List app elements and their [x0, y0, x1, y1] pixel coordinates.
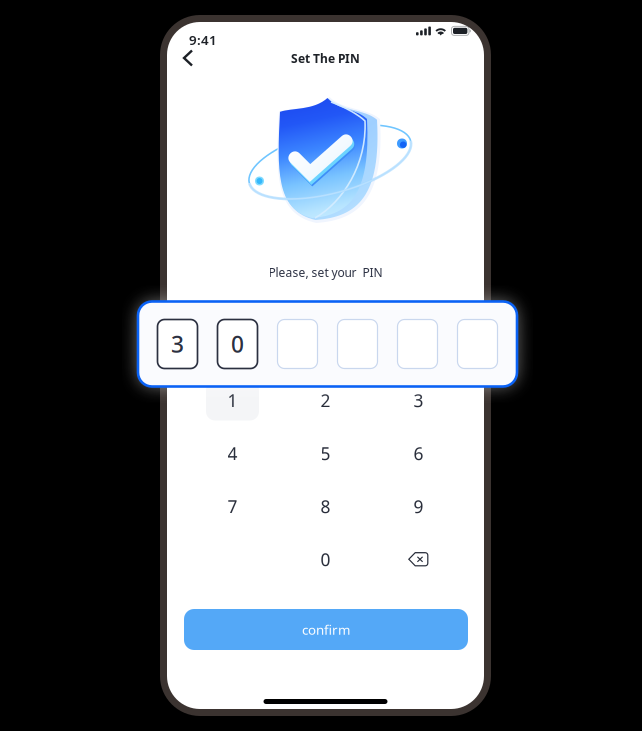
staticText: Please, set your PIN [268, 264, 382, 280]
staticText: 9 [413, 495, 423, 518]
staticText: 0 [320, 548, 330, 571]
staticText: 6 [413, 442, 423, 465]
staticText: 1 [227, 389, 237, 412]
staticText: Set The PIN [291, 50, 360, 66]
button[interactable]: 3 [392, 380, 445, 420]
button[interactable]: 6 [392, 433, 445, 473]
button[interactable]: 2 [299, 380, 352, 420]
staticText: 4 [227, 442, 237, 465]
staticText: 3 [194, 319, 207, 349]
staticText: 7 [227, 495, 237, 518]
button[interactable]: 1 [206, 380, 259, 420]
staticText: 0 [244, 319, 257, 349]
button[interactable]: 9 [392, 486, 445, 526]
button[interactable]: 5 [299, 433, 352, 473]
button[interactable]: 7 [206, 486, 259, 526]
staticText: 3 [413, 389, 423, 412]
staticText: 3 [171, 329, 184, 359]
button[interactable]: Delete [392, 539, 445, 579]
button[interactable]: Back [168, 41, 204, 75]
button[interactable]: 8 [299, 486, 352, 526]
staticText: confirm [302, 621, 350, 638]
button[interactable]: 4 [206, 433, 259, 473]
staticText: 8 [320, 495, 330, 518]
staticText: 0 [231, 329, 244, 359]
staticText: 2 [320, 389, 330, 412]
staticText: 9:41 [189, 31, 217, 49]
button[interactable]: 0 [299, 539, 352, 579]
staticText: 5 [320, 442, 330, 465]
button[interactable]: confirm [184, 609, 468, 650]
